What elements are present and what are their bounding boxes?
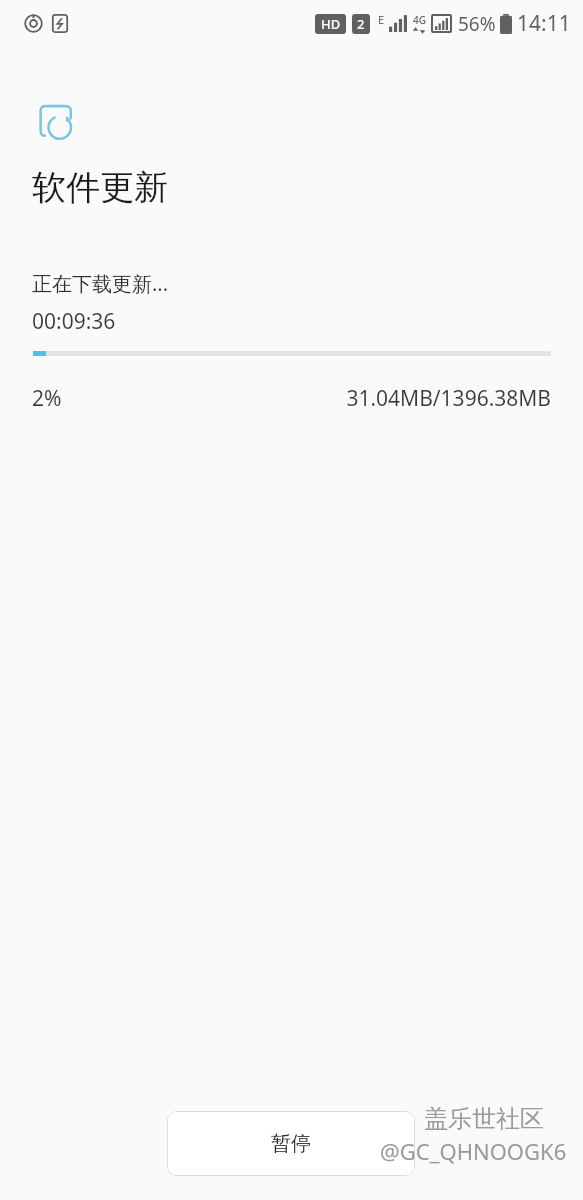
staticText: HD xyxy=(321,15,341,33)
staticText: 软件更新 xyxy=(32,166,168,209)
staticText: 2 xyxy=(357,15,365,33)
button[interactable]: 暂停 xyxy=(167,1111,415,1176)
staticText: 暂停 xyxy=(271,1131,311,1156)
staticText: @GC_QHNOOGK6 xyxy=(380,1136,567,1166)
staticText: 14:11 xyxy=(517,9,571,38)
staticText: 2% xyxy=(32,384,62,413)
staticText: 正在下载更新... xyxy=(32,270,169,297)
staticText: E xyxy=(378,12,385,27)
staticText: 56% xyxy=(458,11,496,37)
staticText: 4G xyxy=(413,13,426,27)
staticText: 盖乐世社区 xyxy=(424,1104,544,1134)
other: Software update xyxy=(34,99,80,145)
staticText: 31.04MB/1396.38MB xyxy=(346,384,551,413)
staticText: 00:09:36 xyxy=(32,307,116,336)
